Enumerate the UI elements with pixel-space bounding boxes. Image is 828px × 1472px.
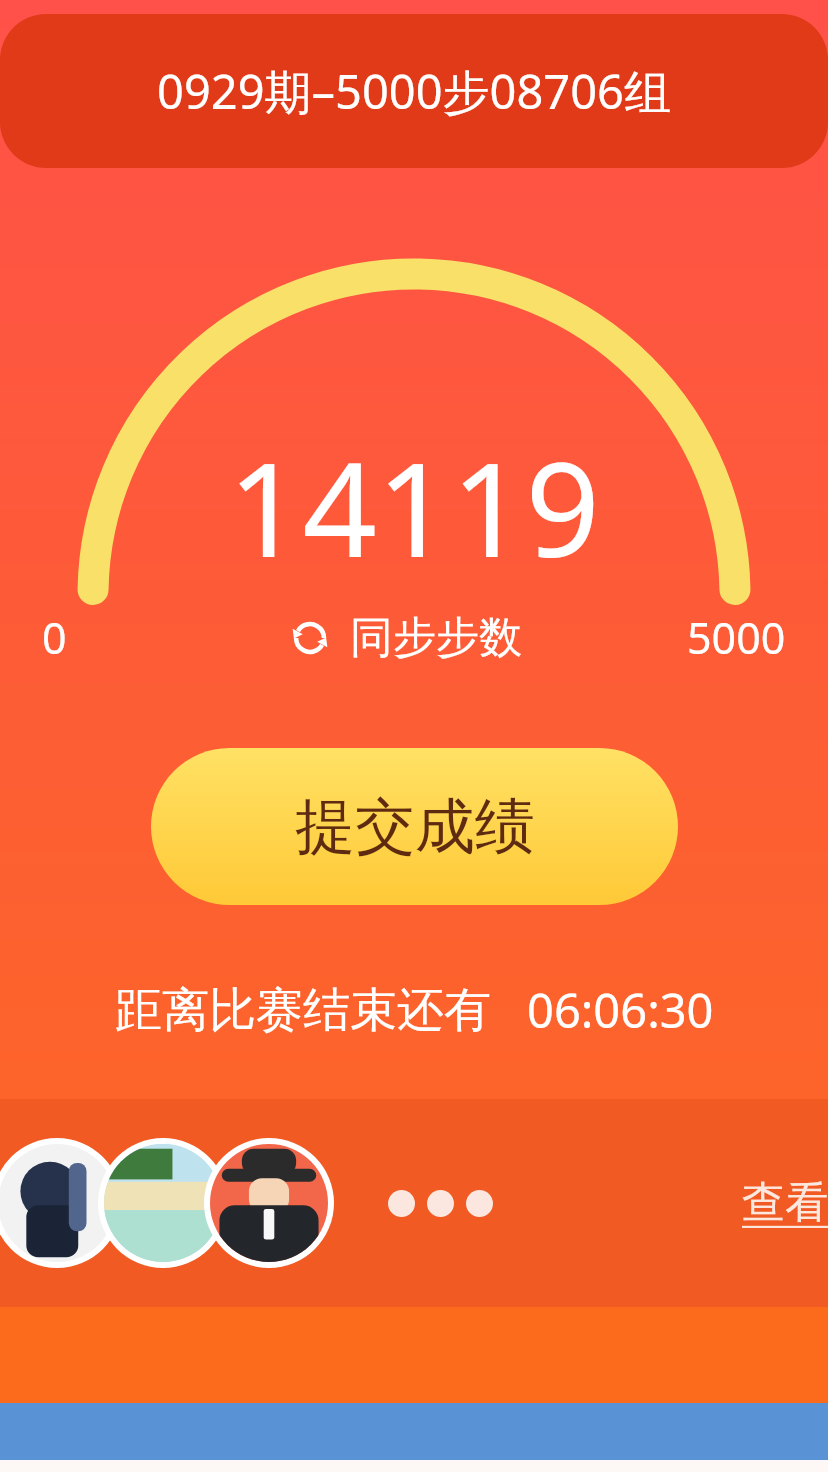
staticText: 14119 <box>228 418 600 595</box>
staticText: 5000 <box>687 608 786 667</box>
button[interactable]: 提交成绩 <box>151 748 678 905</box>
other: Sync steps <box>286 614 334 662</box>
staticText: 距离比赛结束还有 <box>115 981 491 1040</box>
staticText: 0929期–5000步08706组 <box>157 59 671 123</box>
button[interactable]: 0929期–5000步08706组 <box>0 14 828 168</box>
button[interactable]: 查看 <box>742 1176 828 1230</box>
staticText: 查看 <box>742 1176 828 1230</box>
staticText: 0 <box>42 608 67 667</box>
button[interactable]: Participant avatar <box>0 1144 116 1262</box>
button[interactable]: Participant avatar <box>210 1144 328 1262</box>
staticText: 同步步数 <box>350 611 522 665</box>
button[interactable]: Participant avatar <box>0 1099 828 1307</box>
button[interactable]: Sync steps <box>162 611 646 665</box>
button[interactable]: Participant avatar <box>104 1144 222 1262</box>
staticText: 06:06:30 <box>527 978 714 1042</box>
staticText: 提交成绩 <box>295 789 535 865</box>
